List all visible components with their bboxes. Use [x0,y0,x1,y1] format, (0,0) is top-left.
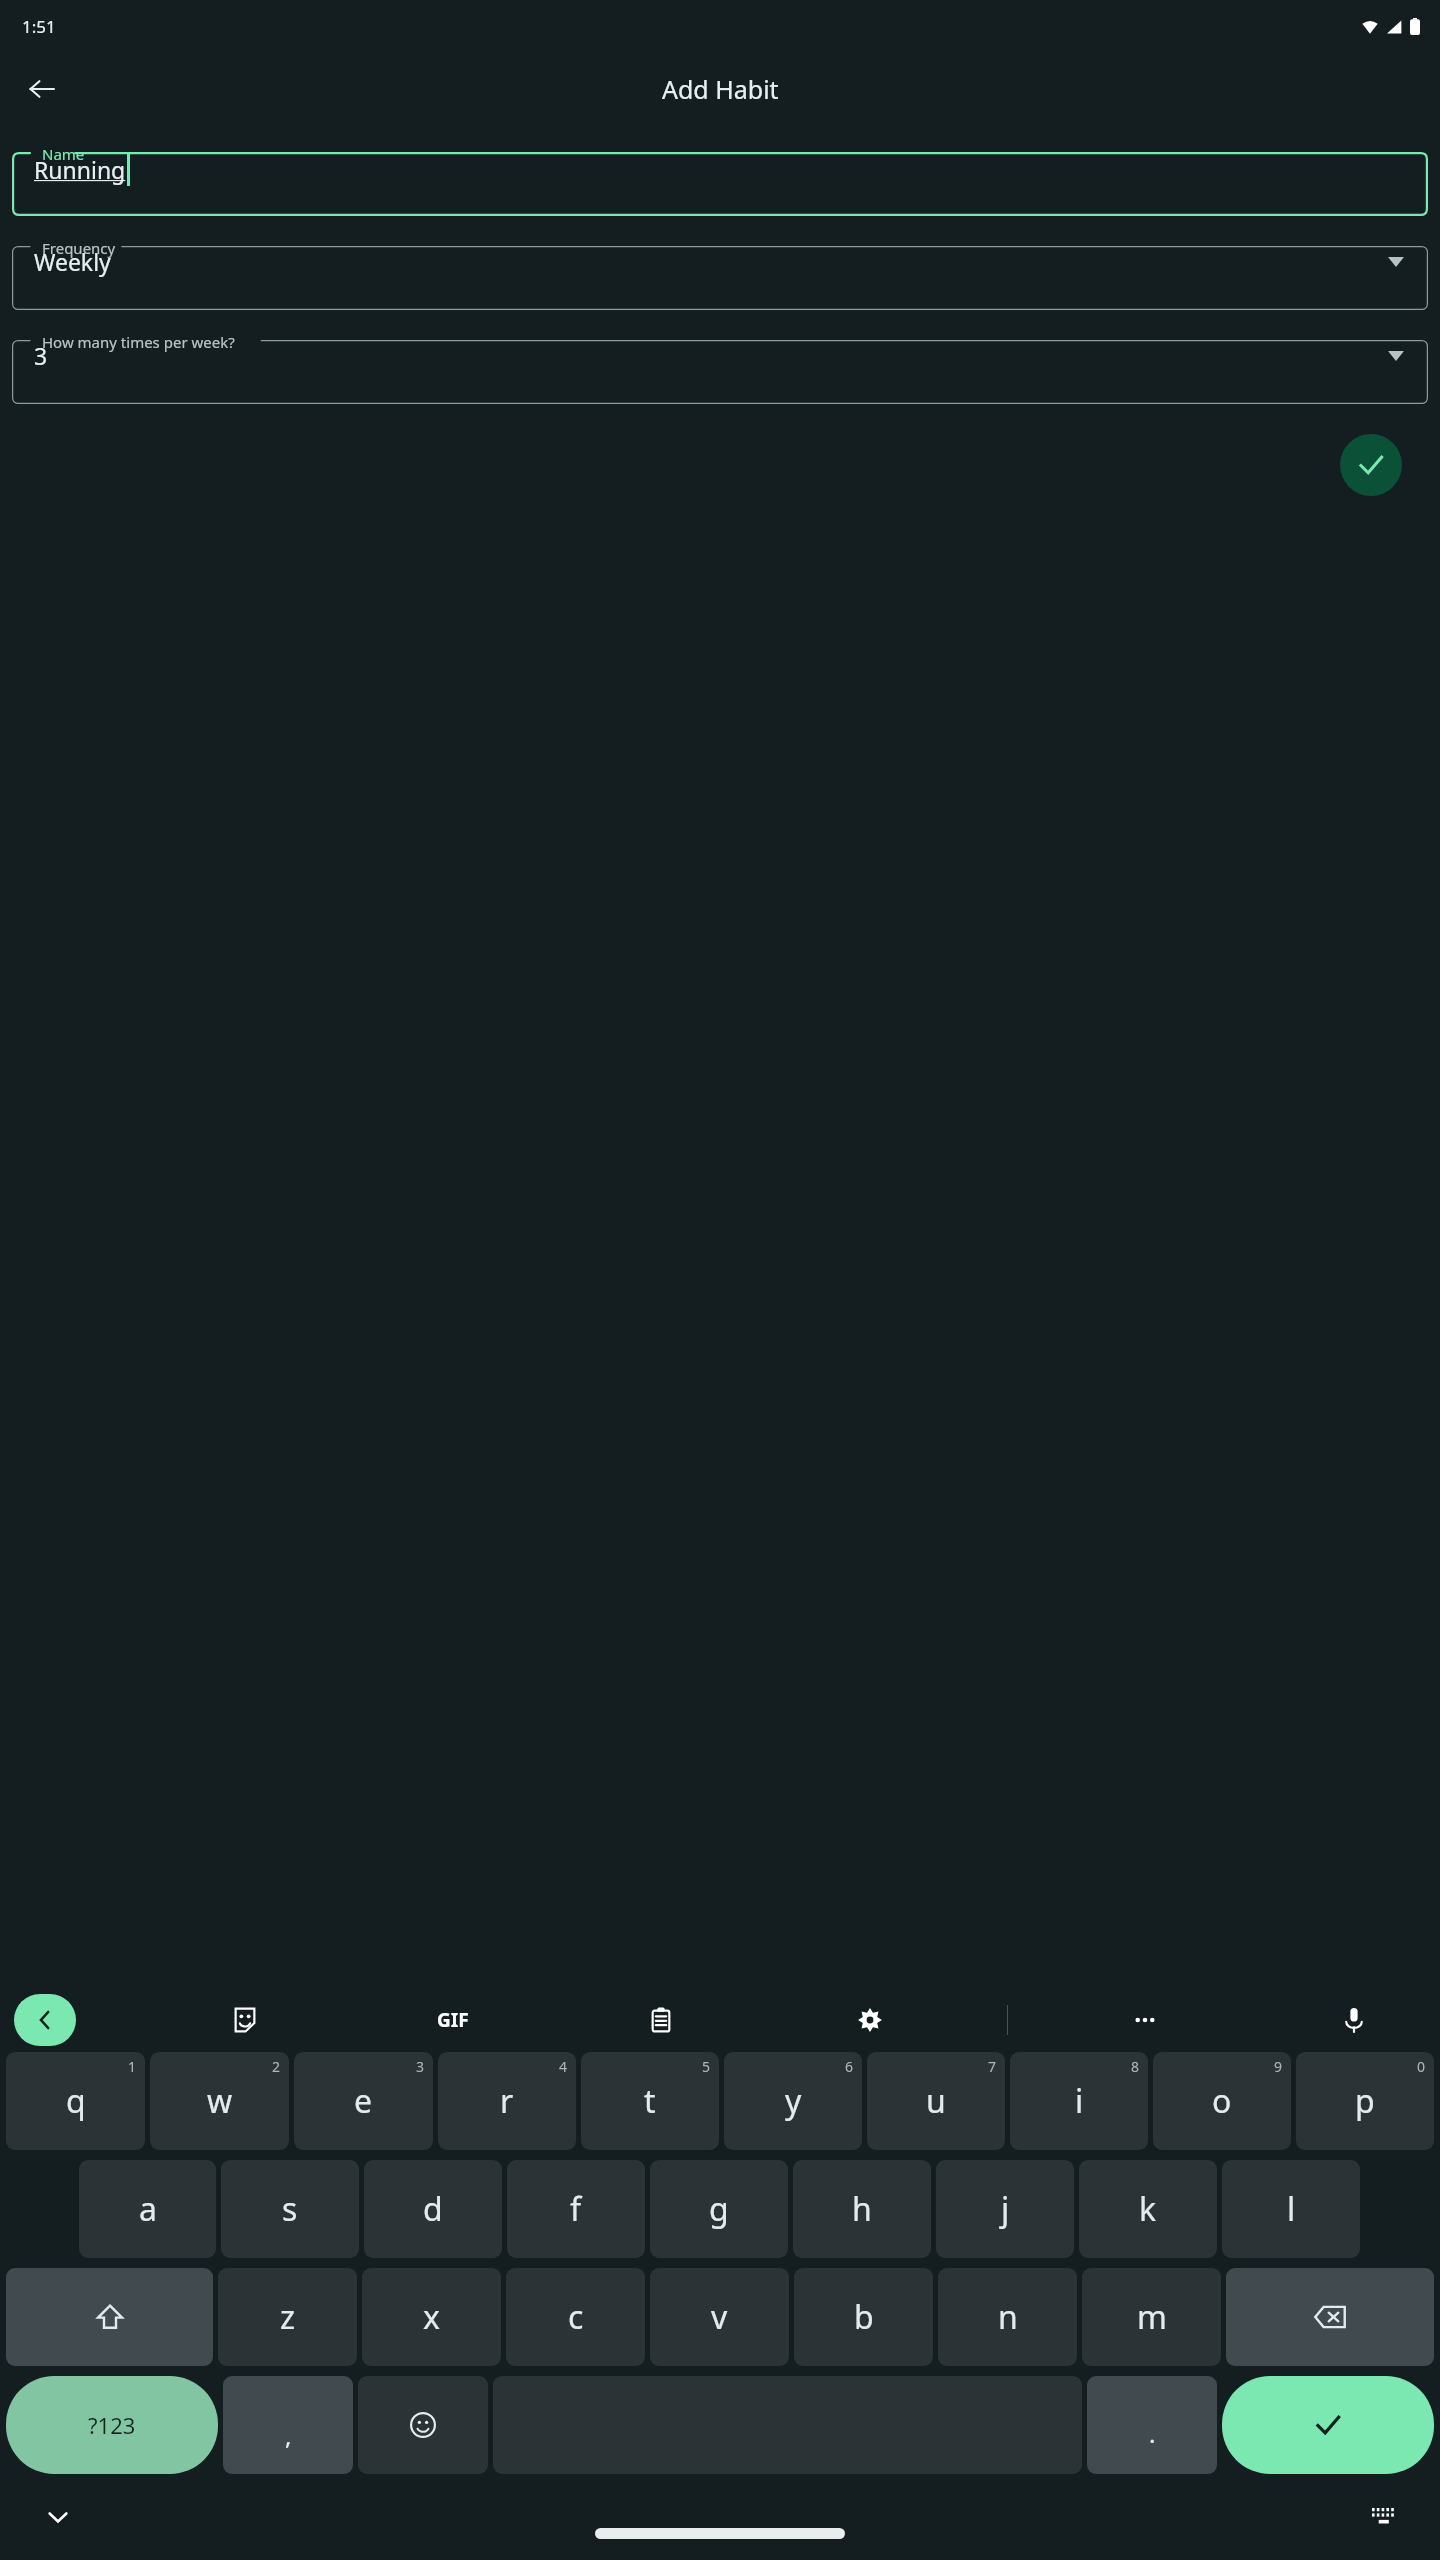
button[interactable]: h [793,2160,931,2258]
staticText: d [423,2187,443,2231]
staticText: q [66,2079,86,2123]
staticText: How many times per week? [42,332,235,352]
button[interactable]: u [867,2052,1005,2150]
staticText: a [139,2187,157,2231]
staticText: Name [42,144,85,164]
button[interactable]: Shift [6,2268,213,2366]
staticText: z [280,2295,296,2339]
button[interactable]: d [364,2160,502,2258]
staticText: 1:51 [22,15,56,38]
button[interactable]: q [6,2052,145,2150]
button[interactable]: i [1010,2052,1148,2150]
staticText: n [998,2295,1018,2339]
button[interactable]: Back [14,61,70,117]
button[interactable]: Comma [223,2376,353,2474]
staticText: 2 [272,2057,281,2076]
button[interactable]: p [1296,2052,1434,2150]
staticText: GIF [437,2007,469,2033]
button[interactable]: GIF [431,2001,475,2039]
button[interactable]: Emoji [358,2376,488,2474]
staticText: m [1137,2295,1167,2339]
button[interactable]: v [650,2268,789,2366]
button[interactable]: Backspace [1226,2268,1434,2366]
staticText: 6 [845,2057,854,2076]
button[interactable]: z [218,2268,357,2366]
button[interactable]: Enter [1222,2376,1434,2474]
staticText: Frequency [42,238,116,258]
button[interactable]: b [794,2268,933,2366]
button[interactable]: Save habit [1340,434,1402,496]
staticText: 0 [1417,2057,1426,2076]
button[interactable]: Weekly [12,246,1428,310]
button[interactable]: Stickers [222,1997,268,2043]
button[interactable]: x [362,2268,501,2366]
staticText: 8 [1131,2057,1140,2076]
staticText: x [423,2295,440,2339]
staticText: 1 [128,2057,137,2076]
staticText: 9 [1274,2057,1283,2076]
button[interactable]: f [507,2160,645,2258]
button[interactable]: e [294,2052,433,2150]
staticText: k [1139,2187,1157,2231]
button[interactable]: t [581,2052,719,2150]
staticText: 3 [416,2057,425,2076]
button[interactable]: j [936,2160,1074,2258]
button[interactable]: s [221,2160,359,2258]
button[interactable]: k [1079,2160,1217,2258]
staticText: r [500,2079,514,2123]
button[interactable]: a [79,2160,216,2258]
staticText: o [1212,2079,1232,2123]
staticText: Running [34,154,126,185]
button[interactable]: Change keyboard [1356,2489,1412,2545]
staticText: , [285,2419,292,2452]
staticText: s [282,2187,298,2231]
staticText: . [1149,2417,1156,2450]
button[interactable]: Settings [847,1997,893,2043]
button[interactable]: 3 [12,340,1428,404]
button[interactable]: ?123 [6,2376,218,2474]
button[interactable]: m [1082,2268,1221,2366]
staticText: 7 [988,2057,997,2076]
staticText: p [1355,2079,1375,2123]
button[interactable]: Period [1087,2376,1217,2474]
staticText: 4 [559,2057,568,2076]
staticText: u [926,2079,946,2123]
staticText: h [852,2187,872,2231]
button[interactable]: c [506,2268,645,2366]
staticText: y [785,2079,802,2123]
staticText: ?123 [88,2410,136,2440]
staticText: f [570,2187,582,2231]
button[interactable]: r [438,2052,576,2150]
staticText: w [207,2079,233,2123]
staticText: t [644,2079,656,2123]
button[interactable]: Running [12,152,1428,216]
staticText: e [354,2079,373,2123]
button[interactable]: More options [1122,1997,1168,2043]
staticText: l [1287,2187,1296,2231]
staticText: i [1075,2079,1084,2123]
button[interactable]: y [724,2052,862,2150]
staticText: 3 [34,340,48,371]
button[interactable]: w [150,2052,289,2150]
staticText: Add Habit [662,72,779,106]
staticText: Weekly [34,246,111,277]
button[interactable]: Clipboard [638,1997,684,2043]
button[interactable]: Voice input [1331,1997,1377,2043]
button[interactable]: n [938,2268,1077,2366]
button[interactable]: Hide keyboard [30,2489,86,2545]
staticText: c [568,2295,584,2339]
staticText: b [854,2295,874,2339]
button[interactable]: g [650,2160,788,2258]
button[interactable]: o [1153,2052,1291,2150]
staticText: j [1001,2187,1010,2231]
staticText: 5 [702,2057,711,2076]
button[interactable]: Close toolbar [14,1994,76,2046]
staticText: v [711,2295,728,2339]
staticText: g [709,2187,729,2231]
button[interactable]: l [1222,2160,1360,2258]
